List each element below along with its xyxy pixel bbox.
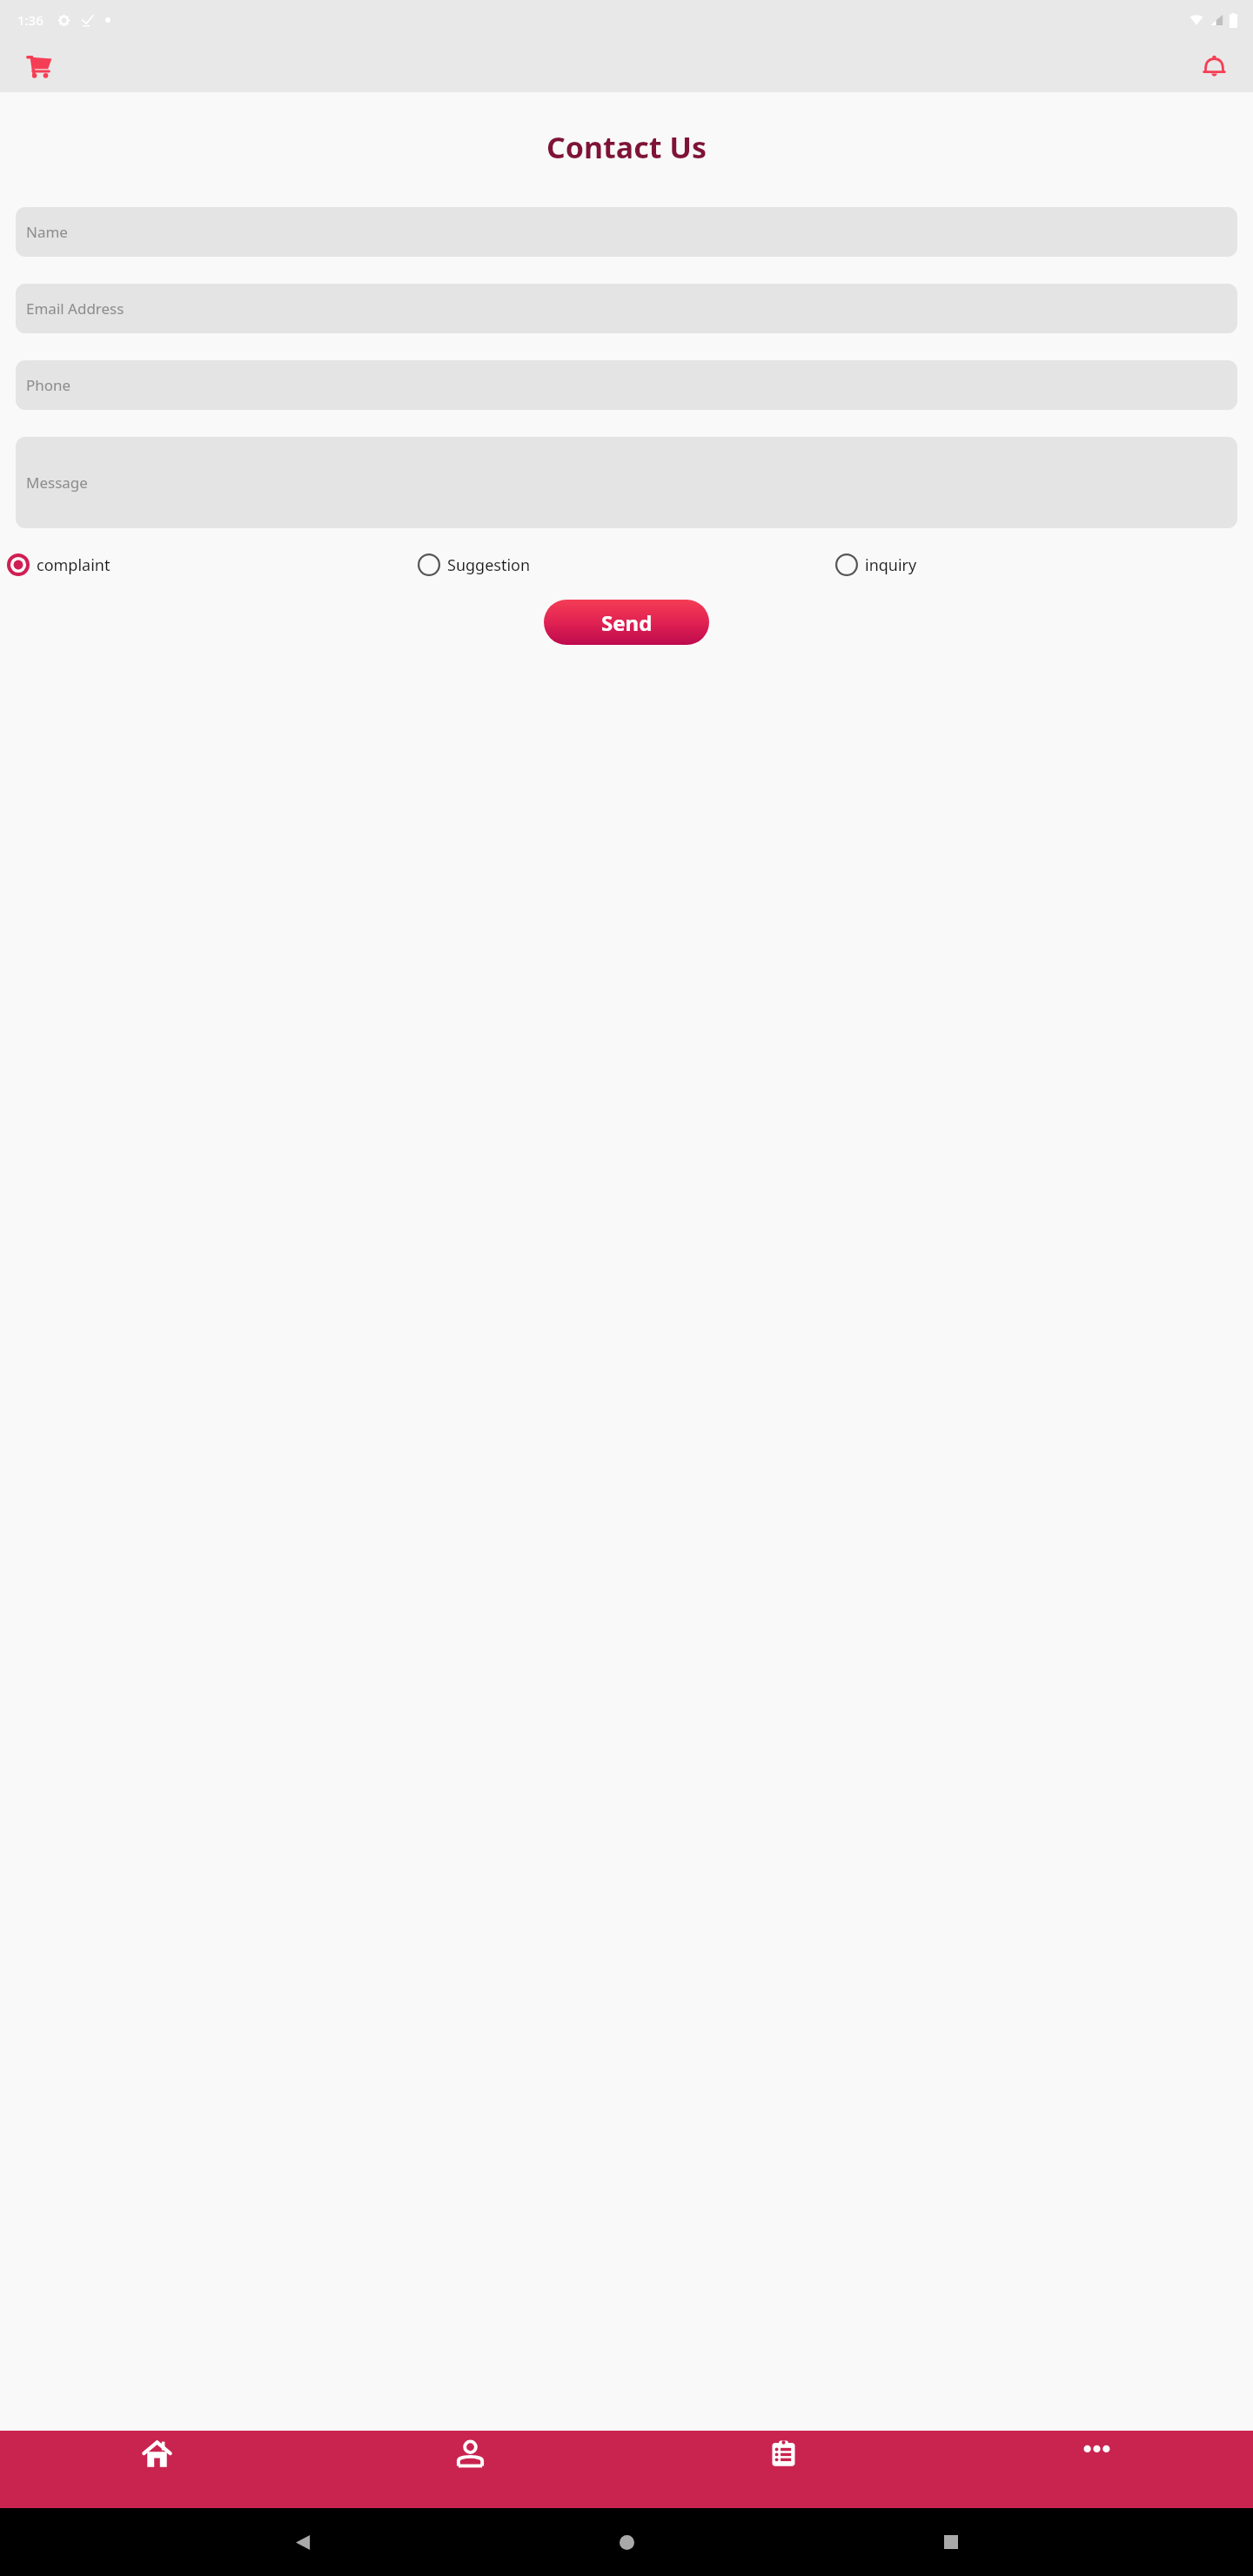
staticText: 1:36 (17, 11, 44, 29)
button[interactable]: Profile (313, 2431, 626, 2508)
button[interactable]: Home (0, 2431, 313, 2508)
staticText: Email Address (26, 299, 124, 319)
button[interactable]: Suggestion (418, 553, 835, 576)
button[interactable]: Phone (16, 360, 1237, 410)
staticText: inquiry (865, 554, 917, 576)
button[interactable]: Notifications (1194, 46, 1234, 86)
staticText: Contact Us (0, 127, 1253, 167)
button[interactable]: Email Address (16, 284, 1237, 333)
staticText: Send (601, 608, 653, 637)
staticText: Message (26, 473, 88, 493)
button[interactable]: Name (16, 207, 1237, 257)
button[interactable]: Cart (19, 46, 59, 86)
button[interactable]: Home (605, 2520, 648, 2564)
button[interactable]: Recents (929, 2520, 973, 2564)
button[interactable]: inquiry (835, 553, 1253, 576)
button[interactable]: Back (281, 2520, 325, 2564)
staticText: Name (26, 222, 68, 242)
button[interactable]: More (940, 2431, 1253, 2508)
button[interactable]: complaint (7, 553, 418, 576)
staticText: complaint (37, 554, 111, 576)
staticText: Phone (26, 375, 71, 395)
staticText: Suggestion (447, 554, 531, 576)
button[interactable]: Send (544, 600, 709, 645)
button[interactable]: Orders (626, 2431, 940, 2508)
button[interactable]: Message (16, 437, 1237, 528)
